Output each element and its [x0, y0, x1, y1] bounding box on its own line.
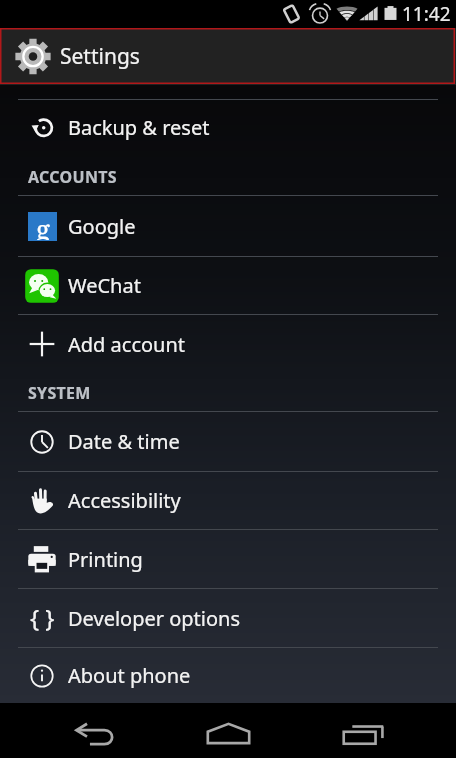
button[interactable]: Add account	[0, 315, 456, 373]
staticText: WeChat	[68, 272, 141, 299]
button[interactable]: Printing	[0, 530, 456, 588]
staticText: { }	[30, 601, 55, 634]
staticText: About phone	[68, 662, 191, 689]
staticText: Printing	[68, 546, 143, 573]
staticText: Google	[68, 213, 136, 240]
button[interactable]: Backup & reset	[0, 100, 456, 154]
staticText: Settings	[60, 42, 140, 71]
staticText: ACCOUNTS	[28, 166, 117, 188]
staticText: g	[36, 211, 50, 240]
button[interactable]: Home	[194, 710, 266, 756]
button[interactable]: Recents	[325, 710, 397, 756]
staticText: Add account	[68, 331, 186, 358]
button[interactable]: WeChat	[0, 257, 456, 314]
staticText: Developer options	[68, 605, 241, 632]
button[interactable]: g	[0, 196, 456, 256]
button[interactable]: Date & time	[0, 412, 456, 471]
staticText: Backup & reset	[68, 114, 210, 141]
button[interactable]: Settings	[0, 28, 456, 85]
button[interactable]: Accessibility	[0, 472, 456, 529]
button[interactable]: Back	[62, 710, 134, 756]
staticText: 11:42	[402, 1, 451, 27]
staticText: SYSTEM	[28, 382, 91, 404]
button[interactable]: { }	[0, 589, 456, 647]
staticText: Accessibility	[68, 487, 181, 514]
button[interactable]: About phone	[0, 648, 456, 703]
staticText: Date & time	[68, 428, 180, 455]
